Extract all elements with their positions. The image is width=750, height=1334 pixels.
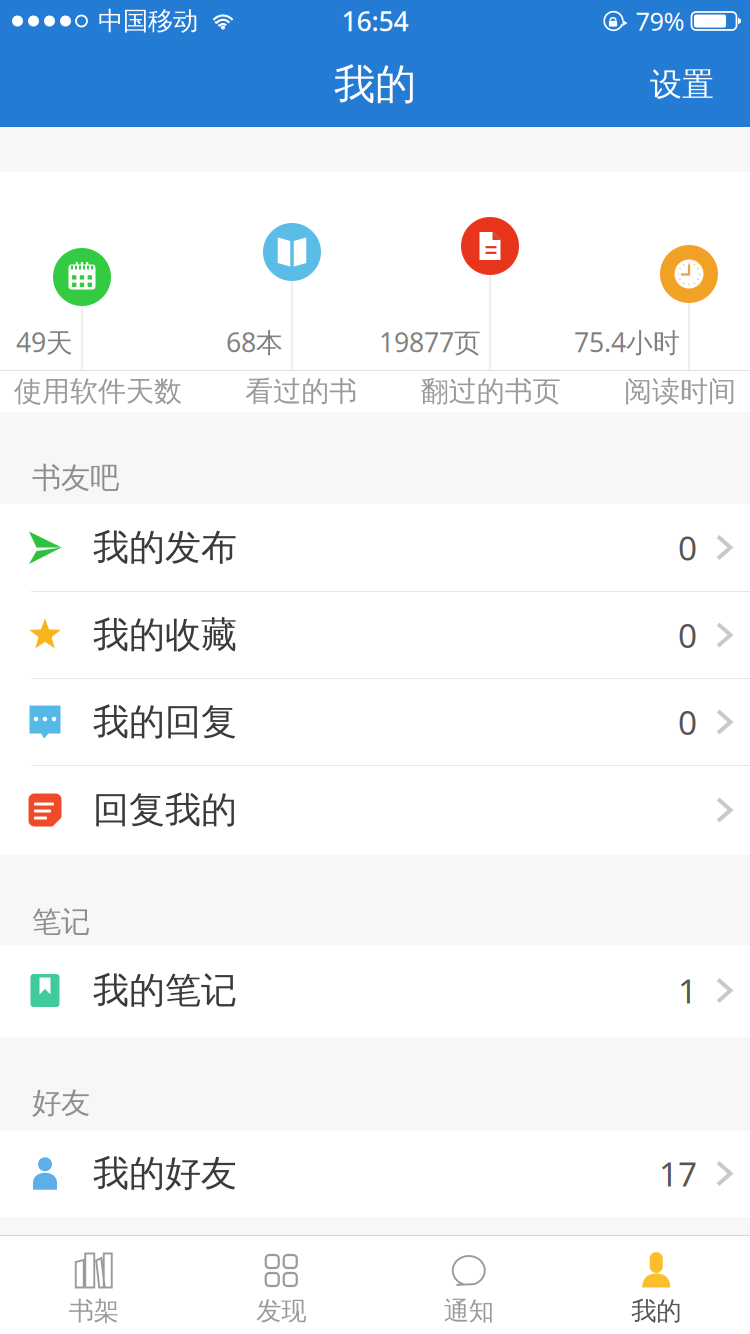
staticText: 75.4小时 — [574, 324, 680, 360]
staticText: 19877页 — [379, 324, 481, 360]
staticText: 我的回复 — [93, 700, 237, 744]
staticText: 79% — [635, 4, 684, 38]
staticText: 0 — [678, 525, 697, 570]
staticText: 好友 — [32, 1085, 90, 1121]
staticText: 0 — [678, 700, 697, 744]
staticText: 我的 — [334, 59, 416, 110]
button[interactable]: 回复我的 — [0, 766, 750, 855]
button[interactable]: 我的发布 — [0, 504, 750, 592]
staticText: 1 — [678, 968, 697, 1013]
staticText: 看过的书 — [245, 374, 357, 409]
button[interactable]: 我的好友 — [0, 1131, 750, 1217]
staticText: 49天 — [16, 324, 73, 360]
staticText: 书友吧 — [32, 460, 119, 496]
staticText: 书架 — [69, 1295, 119, 1327]
staticText: 笔记 — [32, 904, 90, 940]
staticText: 0 — [678, 613, 697, 657]
staticText: 我的好友 — [93, 1151, 237, 1196]
staticText: 阅读时间 — [624, 374, 736, 409]
button[interactable]: 发现 — [187, 1235, 375, 1334]
staticText: 发现 — [256, 1295, 306, 1327]
button[interactable]: 我的 — [562, 1235, 750, 1334]
button[interactable]: 我的收藏 — [0, 592, 750, 679]
button[interactable]: 设置 — [630, 51, 750, 118]
staticText: 16:54 — [341, 3, 408, 39]
staticText: 通知 — [444, 1295, 494, 1327]
staticText: 我的笔记 — [93, 968, 237, 1013]
staticText: 68本 — [226, 324, 283, 360]
staticText: 中国移动 — [98, 5, 198, 36]
staticText: 使用软件天数 — [14, 374, 182, 409]
staticText: 翻过的书页 — [421, 374, 561, 409]
staticText: 17 — [659, 1151, 697, 1196]
staticText: 回复我的 — [93, 788, 237, 832]
staticText: 我的 — [631, 1295, 681, 1327]
button[interactable]: 书架 — [0, 1235, 187, 1334]
button[interactable]: 通知 — [375, 1235, 562, 1334]
staticText: 我的发布 — [93, 525, 237, 570]
button[interactable]: 我的笔记 — [0, 945, 750, 1037]
staticText: 我的收藏 — [93, 613, 237, 657]
staticText: 设置 — [650, 65, 714, 104]
button[interactable]: 我的回复 — [0, 679, 750, 766]
